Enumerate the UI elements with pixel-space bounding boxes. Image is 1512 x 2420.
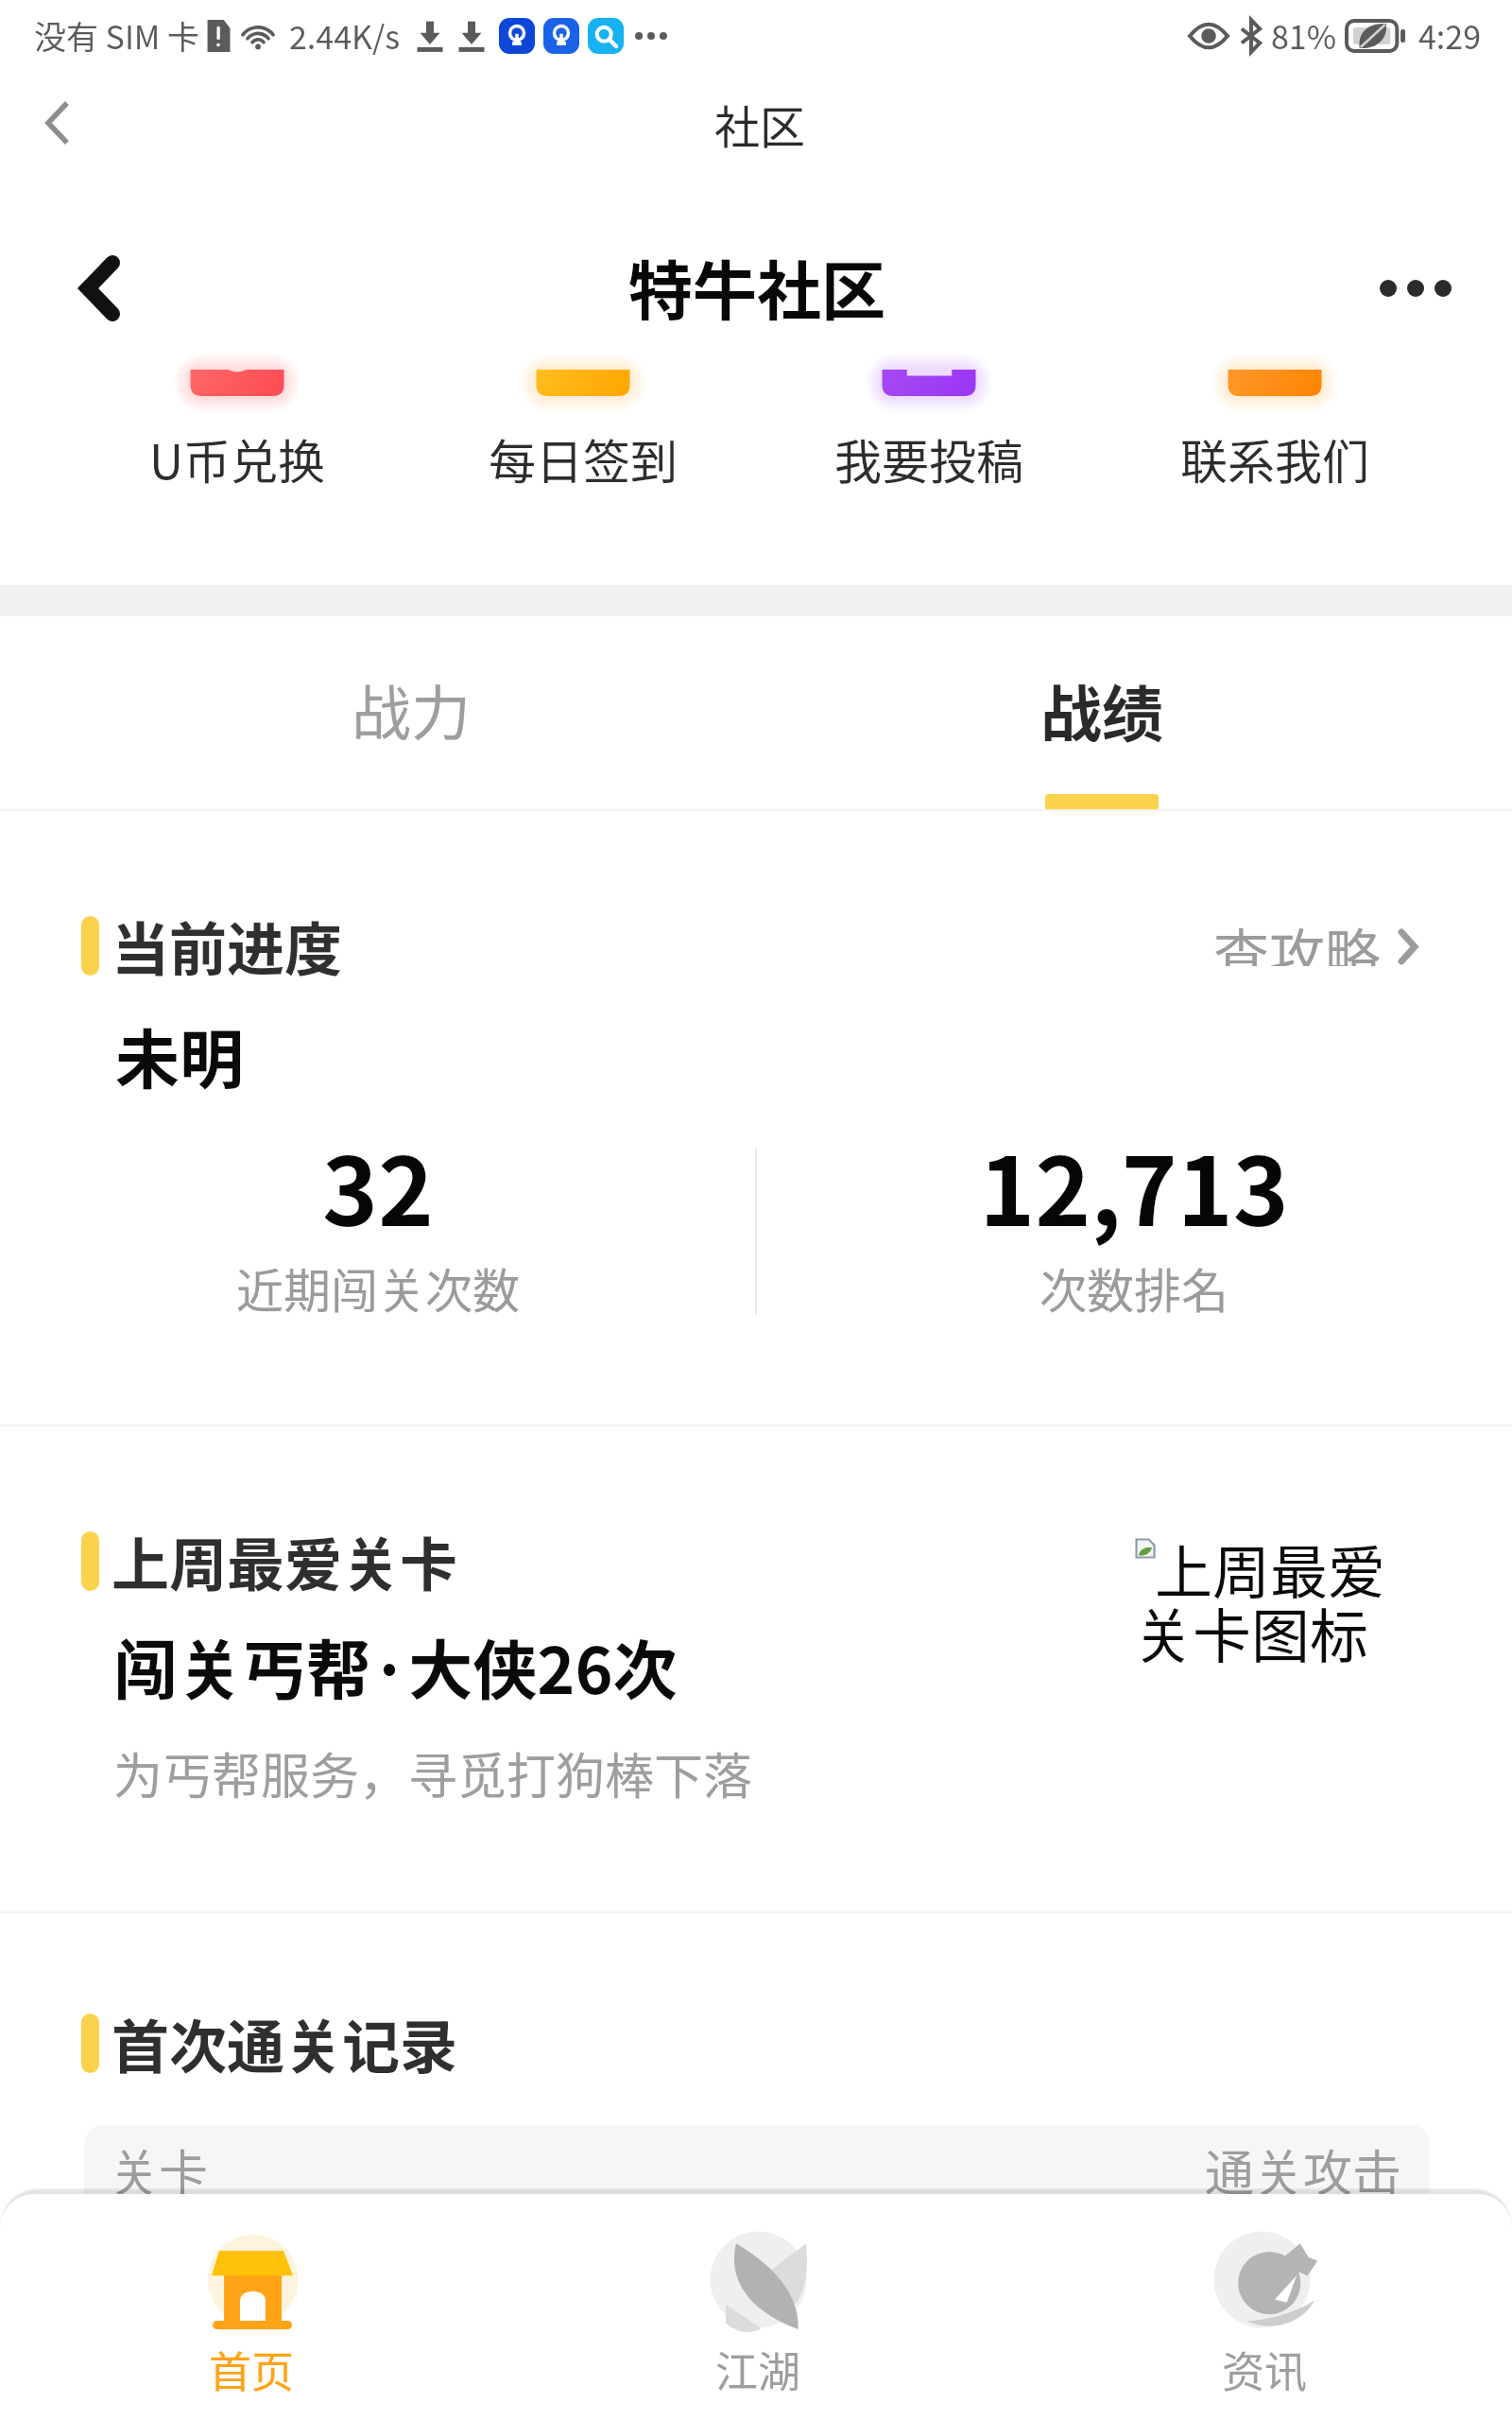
button[interactable]: 每日签到: [410, 370, 756, 493]
staticText: 32: [0, 1116, 756, 1253]
button[interactable]: 资讯: [1215, 2230, 1314, 2400]
staticText: 12,713: [756, 1116, 1512, 1253]
staticText: 江湖: [715, 2339, 801, 2400]
staticText: 查攻略: [1213, 911, 1382, 966]
staticText: 战绩: [1040, 665, 1164, 754]
button[interactable]: 战力: [0, 616, 756, 809]
staticText: 上周最爱关卡: [112, 1519, 458, 1602]
staticText: 社区: [714, 91, 806, 157]
staticText: 战力: [352, 665, 471, 752]
button[interactable]: 江湖: [709, 2230, 808, 2400]
staticText: U币兑换: [64, 424, 410, 493]
button[interactable]: Back: [23, 89, 91, 157]
staticText: 近期闯关次数: [0, 1253, 756, 1322]
staticText: 联系我们: [1102, 424, 1448, 493]
staticText: 关卡图标: [1134, 1590, 1369, 1675]
staticText: 通关攻击: [1205, 2135, 1402, 2205]
staticText: 为丐帮服务，寻觅打狗棒下落: [113, 1737, 753, 1808]
staticText: 首次通关记录: [112, 2001, 458, 2084]
staticText: 闯关丐帮·大侠26次: [113, 1619, 678, 1712]
staticText: 次数排名: [756, 1253, 1512, 1322]
staticText: 没有 SIM 卡: [34, 12, 200, 59]
button[interactable]: 首页: [202, 2230, 301, 2400]
staticText: 上周最爱: [1155, 1527, 1386, 1610]
staticText: 81%: [1271, 12, 1337, 59]
staticText: 当前进度: [112, 904, 343, 987]
staticText: 关卡: [110, 2135, 209, 2205]
staticText: 我要投稿: [756, 424, 1102, 493]
staticText: 2.44K/s: [289, 12, 401, 59]
button[interactable]: 联系我们: [1102, 370, 1448, 493]
button[interactable]: 我要投稿: [756, 370, 1102, 493]
staticText: 首页: [209, 2339, 295, 2400]
staticText: 每日签到: [410, 424, 756, 493]
staticText: 资讯: [1222, 2339, 1308, 2400]
button[interactable]: Back: [55, 243, 146, 334]
button[interactable]: More options: [1370, 243, 1461, 334]
staticText: 4:29: [1418, 12, 1482, 59]
staticText: 未明: [115, 1009, 245, 1101]
button[interactable]: 战绩: [756, 616, 1512, 809]
button[interactable]: 查攻略: [1213, 911, 1417, 966]
button[interactable]: U币兑换: [64, 370, 410, 493]
staticText: 特牛社区: [628, 240, 886, 333]
